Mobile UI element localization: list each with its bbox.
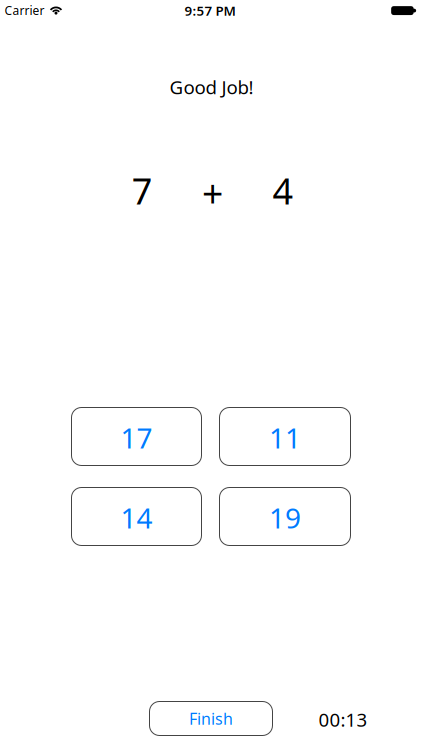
staticText: Carrier	[4, 2, 44, 18]
staticText: Good Job!	[169, 75, 253, 99]
button[interactable]: 11	[219, 407, 351, 466]
staticText: 17	[120, 419, 152, 456]
button[interactable]: Finish	[149, 701, 273, 736]
button[interactable]: 19	[219, 487, 351, 546]
staticText: 9:57 PM	[184, 2, 235, 19]
staticText: Finish	[189, 708, 233, 729]
staticText: 14	[120, 499, 152, 536]
staticText: 11	[269, 419, 301, 456]
staticText: 4	[272, 167, 293, 214]
button[interactable]: 14	[71, 487, 202, 546]
staticText: 7	[132, 167, 153, 214]
staticText: +	[202, 168, 223, 218]
staticText: 19	[269, 499, 301, 536]
button[interactable]: 17	[71, 407, 202, 466]
staticText: 00:13	[318, 707, 367, 732]
